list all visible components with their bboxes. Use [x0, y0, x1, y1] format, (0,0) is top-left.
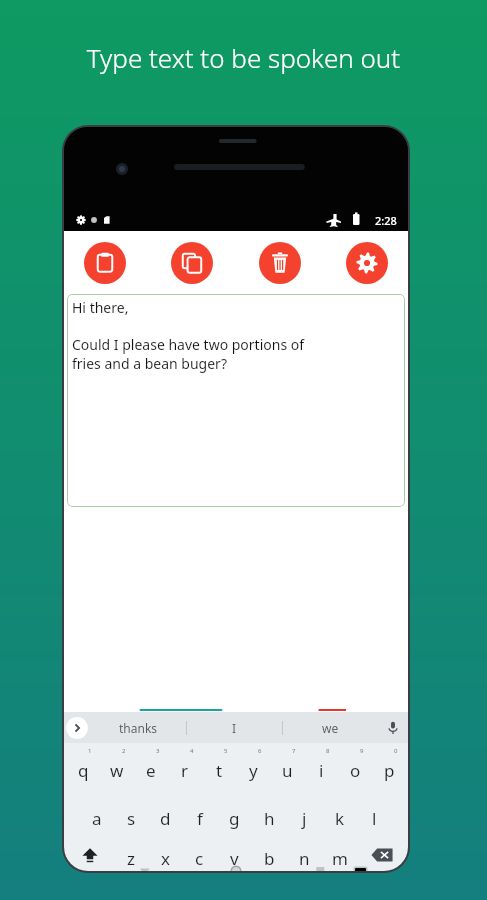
- button[interactable]: k: [322, 791, 357, 839]
- button[interactable]: 2: [100, 743, 134, 791]
- button[interactable]: m: [322, 839, 357, 871]
- staticText: v: [230, 847, 239, 870]
- staticText: 4: [190, 747, 194, 755]
- button[interactable]: b: [252, 839, 287, 871]
- staticText: a: [92, 807, 102, 830]
- staticText: z: [127, 847, 135, 870]
- staticText: f: [197, 807, 203, 830]
- button[interactable]: h: [252, 791, 287, 839]
- staticText: 9: [360, 747, 364, 755]
- button[interactable]: f: [182, 791, 217, 839]
- button[interactable]: we: [283, 712, 378, 743]
- staticText: d: [160, 807, 171, 830]
- staticText: we: [322, 720, 339, 736]
- button[interactable]: Copy: [171, 242, 213, 284]
- button[interactable]: s: [114, 791, 148, 839]
- button[interactable]: Shift: [66, 839, 114, 871]
- staticText: 8: [326, 747, 330, 755]
- staticText: 0: [394, 747, 398, 755]
- staticText: y: [249, 759, 258, 782]
- button[interactable]: 4: [168, 743, 202, 791]
- button[interactable]: 8: [304, 743, 338, 791]
- staticText: c: [195, 847, 204, 870]
- button[interactable]: c: [182, 839, 217, 871]
- staticText: t: [216, 759, 223, 782]
- button[interactable]: n: [287, 839, 322, 871]
- staticText: r: [181, 759, 189, 782]
- button[interactable]: x: [148, 839, 182, 871]
- staticText: q: [78, 759, 89, 782]
- button[interactable]: Backspace: [357, 839, 406, 871]
- staticText: w: [110, 759, 124, 782]
- button[interactable]: 5: [202, 743, 236, 791]
- button[interactable]: j: [287, 791, 322, 839]
- button[interactable]: Delete: [259, 242, 301, 284]
- button[interactable]: l: [357, 791, 392, 839]
- button[interactable]: 7: [270, 743, 304, 791]
- button[interactable]: Hi there,: [67, 294, 405, 507]
- button[interactable]: 9: [338, 743, 372, 791]
- staticText: s: [127, 807, 136, 830]
- staticText: g: [229, 807, 240, 830]
- staticText: n: [299, 847, 310, 870]
- staticText: 2:28: [375, 213, 397, 228]
- staticText: 2: [122, 747, 126, 755]
- button[interactable]: Voice input: [378, 712, 408, 743]
- button[interactable]: d: [148, 791, 182, 839]
- staticText: 7: [292, 747, 296, 755]
- button[interactable]: thanks: [90, 712, 186, 743]
- staticText: 6: [258, 747, 262, 755]
- staticText: l: [372, 807, 377, 830]
- staticText: b: [264, 847, 275, 870]
- button[interactable]: 6: [236, 743, 270, 791]
- button[interactable]: v: [217, 839, 252, 871]
- button[interactable]: Paste: [84, 242, 126, 284]
- staticText: Hi there,: [72, 298, 129, 317]
- button[interactable]: z: [114, 839, 148, 871]
- button[interactable]: 0: [372, 743, 406, 791]
- button[interactable]: I: [187, 712, 282, 743]
- staticText: m: [332, 847, 348, 870]
- button[interactable]: 1: [66, 743, 100, 791]
- button[interactable]: g: [217, 791, 252, 839]
- button[interactable]: a: [80, 791, 114, 839]
- staticText: p: [384, 759, 395, 782]
- staticText: h: [264, 807, 275, 830]
- staticText: 3: [156, 747, 160, 755]
- staticText: Could I please have two portions of frie…: [72, 335, 305, 373]
- staticText: o: [350, 759, 361, 782]
- staticText: Type text to be spoken out: [0, 40, 487, 75]
- staticText: 1: [88, 747, 92, 755]
- button[interactable]: 3: [134, 743, 168, 791]
- staticText: k: [335, 807, 345, 830]
- staticText: 5: [224, 747, 228, 755]
- button[interactable]: Settings: [346, 242, 388, 284]
- staticText: x: [161, 847, 170, 870]
- staticText: I: [232, 720, 237, 736]
- staticText: thanks: [119, 720, 158, 736]
- button[interactable]: Expand: [64, 712, 90, 743]
- staticText: u: [282, 759, 293, 782]
- staticText: e: [146, 759, 156, 782]
- staticText: j: [302, 807, 307, 830]
- staticText: i: [319, 759, 324, 782]
